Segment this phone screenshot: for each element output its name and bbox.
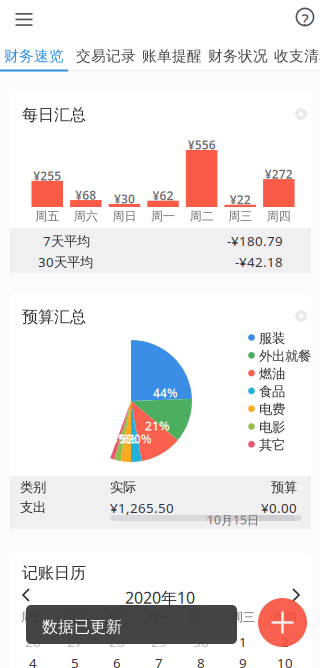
button[interactable]: 帮助	[291, 3, 319, 31]
staticText: 26	[25, 633, 41, 651]
staticText: 外出就餐	[259, 348, 311, 364]
button[interactable]: 财务速览	[3, 43, 65, 69]
staticText: 1	[239, 633, 247, 651]
staticText: 类别	[20, 479, 46, 495]
staticText: 21%	[145, 418, 170, 434]
staticText: 5%	[119, 431, 137, 447]
staticText: -¥42.18	[235, 253, 283, 271]
staticText: 预算	[271, 479, 297, 495]
button[interactable]: 下个月	[283, 582, 309, 608]
staticText: 29	[151, 633, 167, 651]
button[interactable]: 财务状况	[207, 43, 269, 69]
staticText: 服装	[259, 330, 285, 346]
staticText: 20%	[127, 431, 152, 447]
button[interactable]: 设置	[293, 106, 309, 122]
staticText: 交易记录	[76, 47, 136, 65]
staticText: 4	[29, 654, 37, 668]
staticText: ?	[302, 9, 309, 31]
staticText: 44%	[153, 385, 178, 401]
staticText: 每日汇总	[22, 105, 86, 125]
staticText: ¥68	[75, 187, 96, 203]
staticText: 食品	[259, 383, 285, 400]
staticText: 2020年10	[125, 587, 195, 608]
staticText: ¥22	[230, 192, 251, 208]
staticText: -¥180.79	[227, 232, 283, 250]
staticText: 10月15日	[207, 512, 259, 528]
staticText: 其它	[259, 437, 285, 453]
staticText: 数据已更新	[42, 617, 122, 637]
staticText: 账单提醒	[142, 47, 202, 65]
staticText: 周三	[231, 610, 255, 625]
button[interactable]: 上个月	[13, 582, 39, 608]
button[interactable]: 新增记账	[258, 598, 307, 647]
staticText: 8	[197, 654, 205, 668]
staticText: 燃油	[259, 366, 285, 382]
button[interactable]: 交易记录	[75, 43, 137, 69]
staticText: 记账日历	[22, 563, 86, 583]
staticText: 周五	[21, 610, 45, 625]
staticText: 周一	[151, 209, 175, 224]
staticText: 周四	[273, 610, 297, 625]
staticText: 30	[193, 633, 209, 651]
staticText: 收支清单	[274, 47, 320, 65]
staticText: 周二	[190, 209, 214, 224]
button[interactable]: 设置	[293, 308, 309, 324]
staticText: 周六	[63, 610, 87, 625]
staticText: 周五	[35, 209, 59, 224]
staticText: 7天平均	[43, 232, 90, 250]
staticText: 5	[71, 654, 79, 668]
staticText: 财务速览	[4, 47, 64, 65]
staticText: 周日	[112, 209, 136, 224]
staticText: ¥62	[153, 188, 174, 203]
staticText: ¥1,265.50	[110, 499, 174, 517]
staticText: 财务状况	[208, 47, 268, 65]
staticText: 30天平均	[38, 253, 93, 271]
button[interactable]: 菜单	[9, 1, 43, 35]
staticText: 7	[155, 654, 163, 668]
staticText: ¥255	[33, 168, 61, 184]
staticText: 10	[277, 654, 293, 668]
staticText: 周日	[105, 610, 129, 625]
staticText: 27	[67, 633, 83, 651]
staticText: ¥30	[114, 191, 135, 207]
staticText: 预算汇总	[22, 307, 86, 327]
staticText: 周三	[228, 209, 252, 224]
staticText: 电影	[259, 419, 285, 435]
staticText: 5%	[111, 431, 129, 447]
staticText: 28	[109, 633, 125, 651]
staticText: 电费	[259, 401, 285, 418]
staticText: 实际	[110, 479, 136, 495]
staticText: 6	[113, 654, 121, 668]
staticText: 9	[239, 654, 247, 668]
staticText: ¥0.00	[261, 499, 297, 517]
staticText: ¥272	[265, 166, 293, 182]
staticText: ¥556	[188, 137, 216, 153]
button[interactable]: 收支清单	[273, 43, 320, 69]
button[interactable]: 账单提醒	[141, 43, 203, 69]
staticText: 周六	[74, 209, 98, 224]
staticText: 支出	[20, 499, 46, 515]
staticText: 周四	[267, 209, 291, 224]
staticText: 2	[281, 633, 289, 651]
